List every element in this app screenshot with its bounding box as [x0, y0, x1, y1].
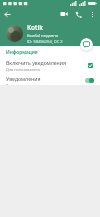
staticText: Kotik: [27, 23, 43, 32]
button[interactable]: Notifications switch: [83, 76, 95, 85]
staticText: был(а) недавно: [27, 33, 59, 39]
button[interactable]: Включить уведомления: [0, 59, 100, 72]
staticText: Включены: [6, 83, 26, 85]
staticText: Для пользователя: [6, 67, 40, 72]
button[interactable]: Back: [0, 7, 14, 21]
staticText: Включить уведомления: [6, 59, 67, 66]
staticText: Уведомления: [6, 75, 41, 82]
button[interactable]: Enable notifications checkbox: [86, 61, 95, 70]
button[interactable]: Video call: [57, 7, 71, 21]
staticText: Информация: [6, 49, 38, 56]
staticText: ID: 58456204, DC 2: [27, 39, 63, 44]
button[interactable]: Call: [71, 7, 85, 21]
button[interactable]: More options: [85, 7, 99, 21]
button[interactable]: Send message: [80, 38, 93, 51]
button[interactable]: Kotik: [0, 22, 100, 44]
button[interactable]: Уведомления: [0, 75, 100, 85]
